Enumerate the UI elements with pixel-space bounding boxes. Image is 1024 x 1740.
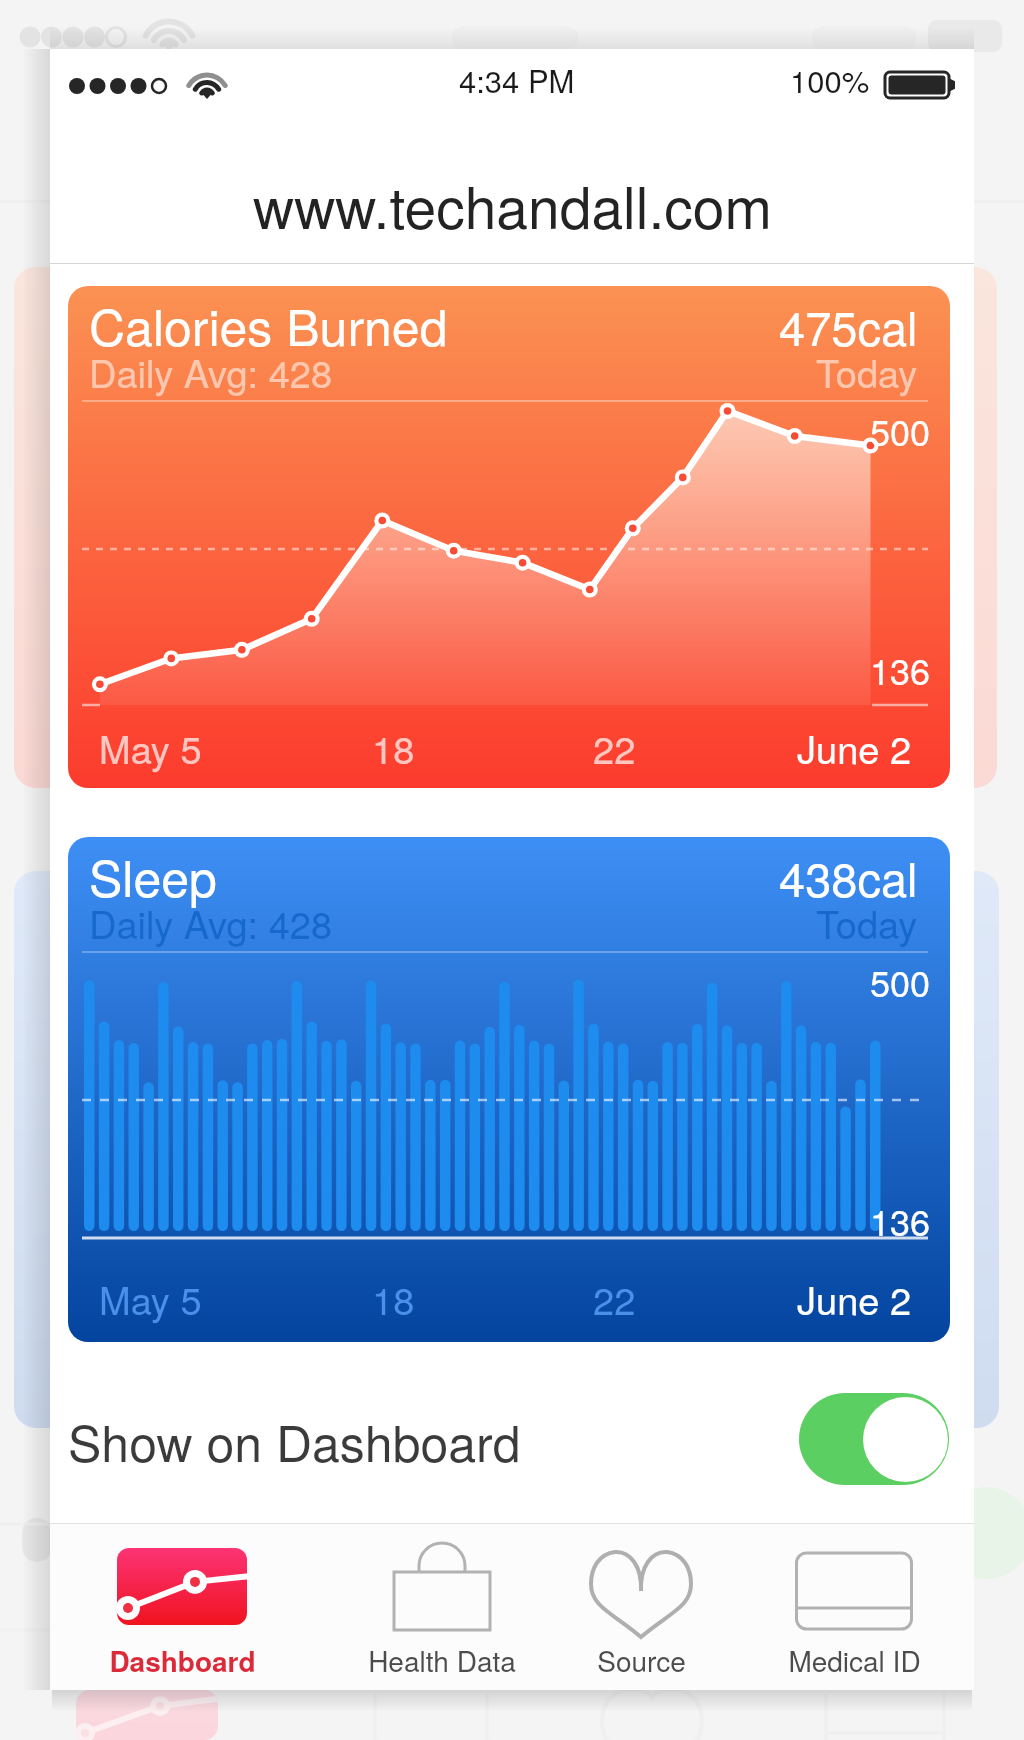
button[interactable]: Dashboard [87,1524,277,1690]
staticText: Sleep [89,840,217,912]
staticText: Health Data [368,1640,516,1680]
staticText: May 5 [99,1271,202,1325]
button[interactable]: Medical ID [759,1524,949,1690]
staticText: Today [816,895,918,949]
staticText: www.techandall.com [253,164,772,246]
staticText: Source [597,1640,686,1680]
button[interactable]: Source [546,1524,736,1690]
staticText: Show on Dashboard [68,1405,521,1477]
other: Show on Dashboard [799,1393,949,1485]
staticText: 18 [372,1271,415,1325]
button[interactable]: Sleep [68,837,950,1342]
button[interactable]: Health Data [347,1524,537,1690]
staticText: 475cal [779,292,918,359]
staticText: Dashboard [109,1640,256,1680]
button[interactable]: Show on Dashboard [50,1351,974,1527]
staticText: June 2 [797,1271,912,1325]
staticText: 136 [870,1195,931,1247]
button[interactable]: Calories Burned [68,286,950,788]
staticText: 22 [593,1271,636,1325]
staticText: 22 [593,720,636,774]
staticText: 100% [790,57,870,101]
staticText: Calories Burned [89,289,448,361]
staticText: 500 [870,956,931,1008]
staticText: 136 [870,644,931,696]
staticText: 438cal [779,843,918,910]
staticText: Today [816,344,918,398]
staticText: 18 [372,720,415,774]
staticText: Medical ID [788,1640,921,1680]
staticText: Daily Avg: 428 [89,344,333,398]
staticText: Daily Avg: 428 [89,895,333,949]
staticText: 500 [870,405,931,457]
staticText: 4:34 PM [459,57,575,101]
staticText: May 5 [99,720,202,774]
button[interactable]: www.techandall.com [50,134,974,276]
staticText: June 2 [797,720,912,774]
